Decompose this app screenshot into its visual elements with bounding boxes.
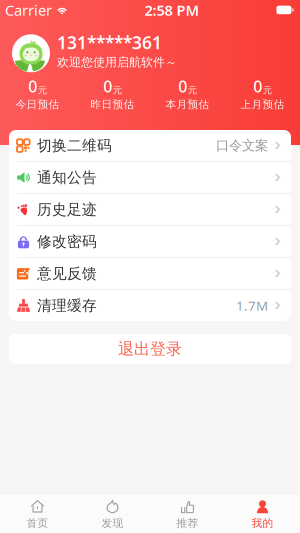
staticText: 元 xyxy=(263,84,272,96)
staticText: 本月预估 xyxy=(165,98,209,111)
staticText: 昨日预估 xyxy=(90,98,134,111)
button[interactable]: 通知公告 xyxy=(9,162,291,194)
button[interactable]: 历史足迹 xyxy=(9,194,291,226)
staticText: 通知公告 xyxy=(37,168,97,186)
button[interactable]: 修改密码 xyxy=(9,226,291,258)
staticText: 1.7M xyxy=(236,297,268,314)
staticText: 今日预估 xyxy=(15,98,59,111)
staticText: 口令文案 xyxy=(216,137,268,154)
staticText: 清理缓存 xyxy=(37,296,97,314)
staticText: 切换二维码 xyxy=(37,136,112,154)
staticText: 2:58 PM xyxy=(144,0,199,20)
staticText: 意见反馈 xyxy=(37,264,97,282)
button[interactable]: 推荐 xyxy=(150,494,225,533)
staticText: 我的 xyxy=(251,517,273,530)
button[interactable]: 退出登录 xyxy=(9,334,291,364)
staticText: 欢迎您使用启航软件～ xyxy=(57,55,177,70)
staticText: 发现 xyxy=(101,517,123,530)
staticText: 修改密码 xyxy=(37,232,97,250)
staticText: 0 xyxy=(253,76,262,97)
staticText: 元 xyxy=(113,84,122,96)
staticText: 元 xyxy=(38,84,47,96)
staticText: 131*****361 xyxy=(57,31,162,54)
staticText: 首页 xyxy=(26,517,48,530)
button[interactable]: 我的 xyxy=(225,494,300,533)
staticText: 上月预估 xyxy=(240,98,284,111)
button[interactable]: 意见反馈 xyxy=(9,258,291,290)
staticText: 退出登录 xyxy=(118,339,182,359)
staticText: 元 xyxy=(188,84,197,96)
staticText: 历史足迹 xyxy=(37,200,97,218)
button[interactable]: 发现 xyxy=(75,494,150,533)
staticText: 0 xyxy=(178,76,187,97)
staticText: Carrier xyxy=(5,0,52,20)
button[interactable]: 清理缓存 xyxy=(9,290,291,321)
staticText: 0 xyxy=(103,76,112,97)
staticText: 推荐 xyxy=(176,517,198,530)
staticText: 0 xyxy=(28,76,37,97)
button[interactable]: 首页 xyxy=(0,494,75,533)
button[interactable]: 切换二维码 xyxy=(9,130,291,162)
